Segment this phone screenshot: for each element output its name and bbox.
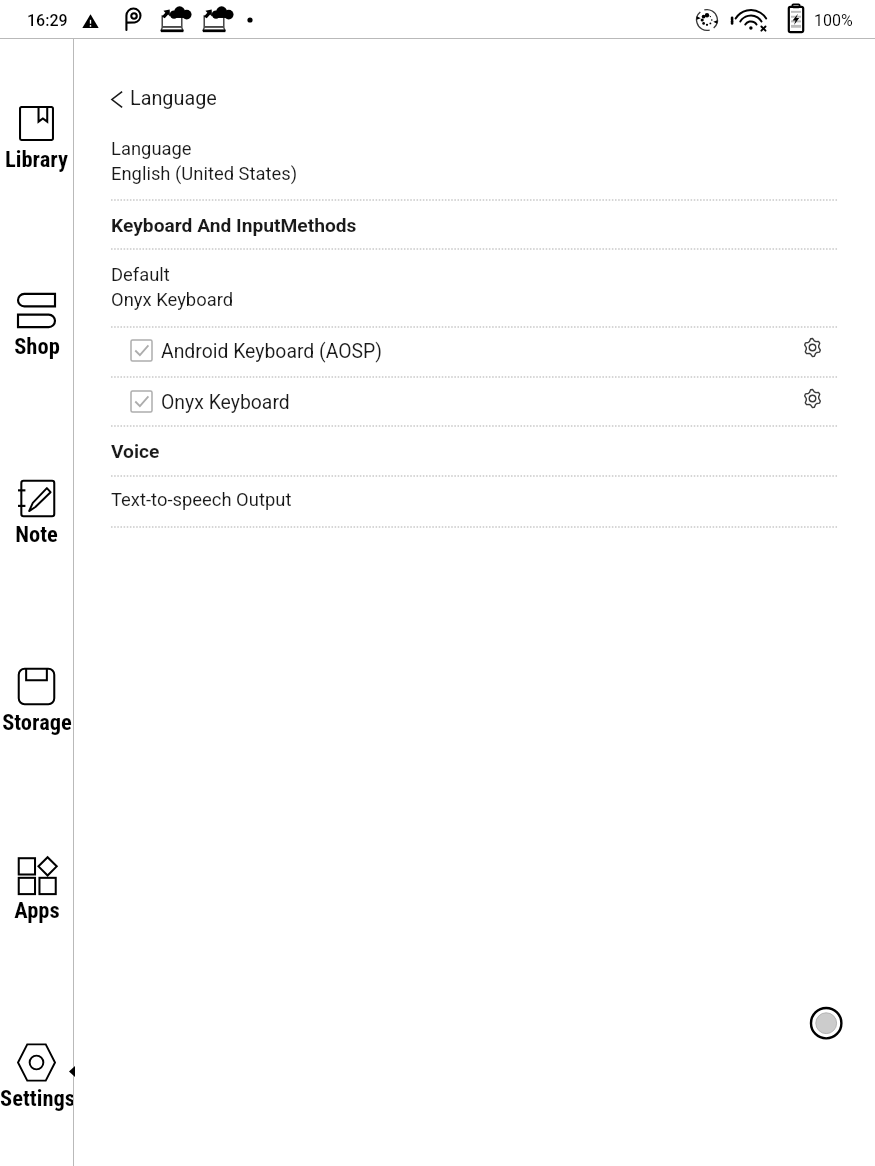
button[interactable]: Onyx Keyboard	[73, 379, 875, 424]
button[interactable]: Note	[0, 472, 73, 550]
button[interactable]: Library	[0, 97, 73, 175]
staticText: Language	[130, 87, 217, 110]
staticText: Voice	[111, 440, 160, 463]
staticText: Language	[111, 138, 192, 160]
button[interactable]	[73, 249, 875, 326]
staticText: Apps	[14, 897, 60, 923]
button[interactable]: Android Keyboard (AOSP)	[73, 328, 875, 373]
button[interactable]	[73, 426, 875, 475]
button[interactable]: Back	[108, 83, 217, 113]
button[interactable]: Keyboard settings	[802, 388, 823, 411]
staticText: Settings	[0, 1085, 73, 1111]
button[interactable]	[73, 200, 875, 248]
button[interactable]: Settings	[0, 1036, 73, 1114]
staticText: Note	[15, 521, 58, 547]
staticText: Shop	[14, 333, 60, 359]
staticText: Library	[5, 146, 68, 172]
other: Back	[108, 91, 123, 108]
staticText: 16:29	[27, 11, 68, 30]
staticText: English (United States)	[111, 163, 298, 185]
staticText: Text-to-speech Output	[111, 489, 292, 511]
staticText: Onyx Keyboard	[161, 391, 290, 414]
button[interactable]: Shop	[0, 284, 73, 362]
button[interactable]: Apps	[0, 848, 73, 926]
button[interactable]: Storage	[0, 660, 73, 738]
button[interactable]	[73, 126, 875, 199]
staticText: Keyboard And InputMethods	[111, 214, 357, 237]
button[interactable]: Collapse sidebar	[69, 1066, 75, 1077]
button[interactable]: Page indicator	[808, 1005, 844, 1041]
staticText: Storage	[2, 709, 72, 735]
staticText: Default	[111, 264, 170, 286]
staticText: 100%	[814, 11, 853, 30]
button[interactable]	[73, 476, 875, 526]
staticText: Android Keyboard (AOSP)	[161, 340, 383, 363]
button[interactable]: Keyboard settings	[802, 337, 823, 360]
staticText: Onyx Keyboard	[111, 289, 234, 311]
